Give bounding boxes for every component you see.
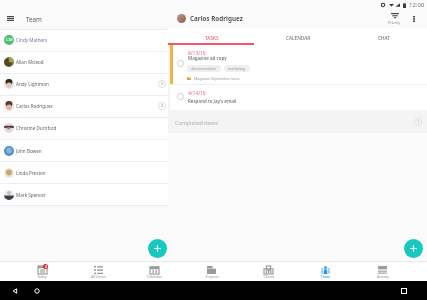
staticText: Projects — [205, 274, 219, 279]
button[interactable]: Completed items — [168, 111, 427, 133]
staticText: Clients — [263, 274, 275, 279]
button[interactable]: Christine Durnford — [0, 117, 168, 139]
staticText: Magazine September issue — [194, 76, 240, 81]
staticText: marketing — [228, 66, 246, 71]
button[interactable]: Allan Mcleod — [0, 51, 168, 73]
button[interactable]: John Bowen — [0, 140, 168, 162]
staticText: 2 — [161, 81, 164, 87]
staticText: Allan Mcleod — [16, 59, 44, 65]
button[interactable]: TASKS — [168, 30, 255, 45]
button[interactable]: Add — [404, 239, 423, 258]
button[interactable]: 8/13/19 — [170, 45, 427, 84]
button[interactable]: Open navigation menu — [4, 12, 17, 25]
button[interactable]: Team — [297, 261, 354, 281]
button[interactable]: All Items — [70, 261, 126, 281]
staticText: John Bowen — [16, 148, 42, 154]
button[interactable]: Andy Lightman — [0, 73, 168, 95]
staticText: Team — [26, 15, 42, 23]
staticText: Linda Preston — [16, 170, 46, 176]
staticText: CM — [6, 37, 13, 43]
staticText: Christine Durnford — [16, 125, 57, 131]
button[interactable]: Clients — [240, 261, 297, 281]
other: Home — [34, 288, 40, 294]
button[interactable]: 4/14/19 — [170, 85, 427, 110]
staticText: 12:00 — [409, 1, 425, 9]
other: Recents — [401, 288, 407, 294]
staticText: Mark Spencer — [16, 192, 46, 198]
staticText: Activity — [377, 274, 389, 279]
staticText: All Items — [91, 274, 106, 279]
staticText: documentation — [191, 66, 217, 71]
staticText: 4 — [45, 264, 47, 269]
staticText: Carlos Rodriguez — [16, 103, 53, 109]
staticText: 1 — [417, 119, 420, 125]
button[interactable]: Projects — [183, 261, 240, 281]
button[interactable]: 4 — [14, 261, 70, 281]
staticText: Completed items — [175, 119, 219, 126]
button[interactable]: CM — [0, 29, 168, 51]
staticText: Team — [321, 274, 330, 279]
button[interactable]: CHAT — [341, 30, 427, 45]
button[interactable]: Add — [148, 239, 167, 258]
button[interactable]: Carlos Rodriguez — [0, 95, 168, 117]
button[interactable]: Activity — [354, 261, 411, 281]
staticText: 2 — [161, 103, 164, 109]
staticText: 8/13/19 — [188, 50, 206, 57]
button[interactable]: CALENDAR — [255, 30, 341, 45]
button[interactable]: Mark Spencer — [0, 184, 168, 206]
staticText: Cindy Mathers — [16, 37, 48, 43]
staticText: Andy Lightman — [16, 81, 49, 87]
staticText: Carlos Rodriguez — [190, 14, 243, 23]
staticText: Magazine ad copy — [188, 55, 227, 61]
button[interactable]: Priority sort — [388, 13, 401, 25]
staticText: Priority — [388, 20, 401, 25]
button[interactable]: Calendar — [126, 261, 183, 281]
button[interactable]: Linda Preston — [0, 162, 168, 184]
staticText: TASKS — [205, 35, 219, 41]
staticText: CALENDAR — [286, 35, 311, 41]
staticText: Today — [37, 274, 47, 279]
other: Back — [12, 288, 18, 294]
staticText: 4/14/19 — [188, 90, 206, 97]
staticText: Calendar — [147, 274, 162, 279]
staticText: CHAT — [378, 35, 390, 41]
staticText: Respond to Jay's email — [188, 98, 237, 104]
button[interactable]: More options — [408, 13, 420, 25]
